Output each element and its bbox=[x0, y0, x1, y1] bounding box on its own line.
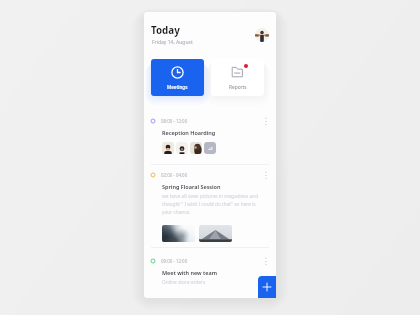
button[interactable]: More options bbox=[262, 116, 270, 126]
staticText: 09:00 - 12:00 bbox=[161, 258, 188, 264]
button[interactable]: Meetings bbox=[151, 59, 204, 96]
button[interactable]: Profile bbox=[255, 28, 269, 42]
staticText: Online store orders bbox=[162, 279, 206, 285]
staticText: we have all seen pictures in magazines a… bbox=[162, 193, 266, 216]
staticText: Meetings bbox=[167, 84, 188, 90]
staticText: 08:00 - 12:00 bbox=[161, 118, 188, 124]
button[interactable]: Reports bbox=[211, 59, 264, 96]
button[interactable]: 09:00 - 12:00 bbox=[144, 256, 276, 285]
button[interactable]: More options bbox=[262, 256, 270, 266]
button[interactable]: Add bbox=[258, 276, 276, 298]
staticText: Spring Floaral Session bbox=[162, 183, 221, 190]
staticText: Meet with new team bbox=[162, 269, 218, 276]
button[interactable]: More options bbox=[262, 170, 270, 180]
button[interactable]: 02:00 - 04:00 bbox=[144, 170, 276, 242]
staticText: Friday 14, August bbox=[152, 39, 193, 46]
button[interactable]: 08:00 - 12:00 bbox=[144, 116, 276, 154]
staticText: Reports bbox=[229, 84, 247, 91]
staticText: Reception Hoarding bbox=[162, 129, 216, 136]
staticText: Today bbox=[151, 24, 180, 37]
staticText: +2 bbox=[208, 146, 213, 151]
staticText: 02:00 - 04:00 bbox=[161, 172, 188, 178]
